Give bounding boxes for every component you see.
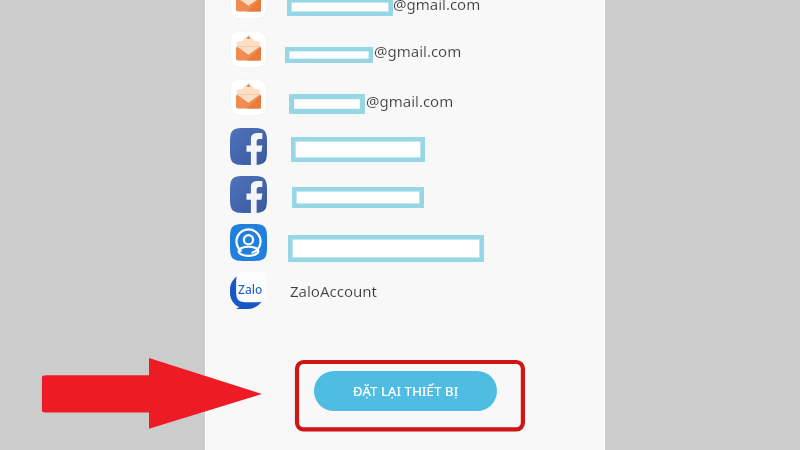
other: Email account bbox=[230, 0, 267, 19]
other: Zalo account bbox=[230, 272, 267, 309]
other: Email account bbox=[230, 31, 267, 68]
staticText: ĐẶT LẠI THIẾT BỊ bbox=[353, 382, 459, 400]
other: Email account bbox=[230, 79, 267, 116]
button[interactable]: Samsung account bbox=[205, 218, 605, 266]
button[interactable]: Facebook account bbox=[205, 122, 605, 170]
button[interactable]: Zalo account bbox=[205, 266, 605, 314]
button[interactable]: Email account bbox=[205, 74, 605, 122]
staticText: @gmail.com bbox=[366, 91, 454, 111]
button[interactable]: ĐẶT LẠI THIẾT BỊ bbox=[314, 371, 497, 411]
staticText: Zalo bbox=[238, 281, 263, 297]
staticText: @gmail.com bbox=[393, 0, 481, 14]
button[interactable]: Email account bbox=[205, 26, 605, 74]
button[interactable]: Email account bbox=[205, 0, 605, 25]
other: Samsung account bbox=[230, 224, 267, 261]
staticText: @gmail.com bbox=[374, 41, 462, 61]
staticText: ZaloAccount bbox=[290, 281, 377, 301]
other: Facebook account bbox=[230, 128, 267, 165]
other: Facebook account bbox=[230, 176, 267, 213]
button[interactable]: Facebook account bbox=[205, 170, 605, 218]
